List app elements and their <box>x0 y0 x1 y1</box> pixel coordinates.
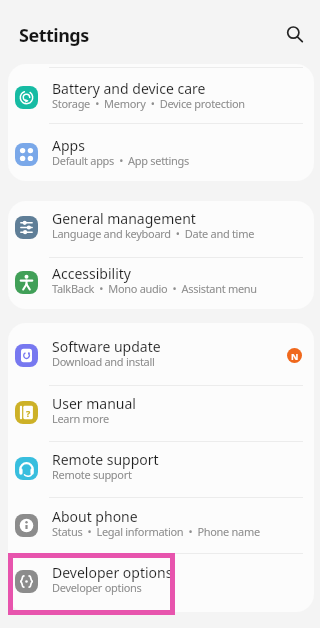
button[interactable]: Battery and device care <box>8 71 314 123</box>
staticText: Developer options <box>52 563 173 582</box>
button[interactable]: Software update <box>8 329 314 381</box>
button[interactable]: Apps <box>8 128 314 180</box>
staticText: Apps <box>52 136 85 155</box>
staticText: Remote support <box>52 467 132 482</box>
staticText: Developer options <box>52 580 142 595</box>
staticText: Default apps • App settings <box>52 153 190 168</box>
staticText: Battery and device care <box>52 79 206 98</box>
staticText: Download and install <box>52 354 155 369</box>
staticText: General management <box>52 209 196 228</box>
staticText: Language and keyboard • Date and time <box>52 226 255 241</box>
staticText: TalkBack • Mono audio • Assistant menu <box>52 281 257 296</box>
button[interactable]: Developer options <box>8 555 314 607</box>
staticText: Status • Legal information • Phone name <box>52 524 260 539</box>
button[interactable] <box>283 22 305 44</box>
staticText: Accessibility <box>52 264 131 283</box>
staticText: Storage • Memory • Device protection <box>52 96 245 111</box>
button[interactable]: ? <box>8 386 314 438</box>
staticText: About phone <box>52 507 138 526</box>
staticText: N <box>291 350 299 362</box>
staticText: Settings <box>19 23 89 48</box>
staticText: ? <box>26 407 31 419</box>
button[interactable]: Remote support <box>8 442 314 494</box>
staticText: User manual <box>52 394 136 413</box>
staticText: Learn more <box>52 411 109 426</box>
staticText: Remote support <box>52 450 159 469</box>
button[interactable]: General management <box>8 201 314 253</box>
button[interactable]: Accessibility <box>8 256 314 308</box>
staticText: Software update <box>52 337 161 356</box>
button[interactable]: About phone <box>8 499 314 551</box>
